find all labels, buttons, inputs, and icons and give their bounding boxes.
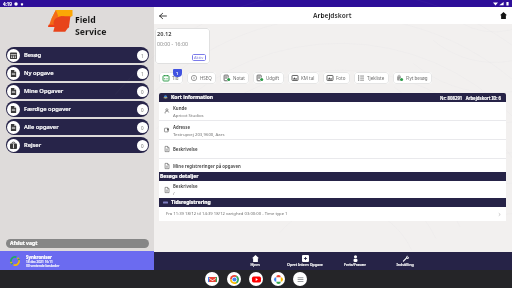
button[interactable]: Beskrivelse bbox=[159, 140, 506, 158]
staticText: Synkroniser bbox=[26, 254, 53, 260]
staticText: Adresse bbox=[173, 124, 190, 130]
staticText: Tid bbox=[172, 75, 179, 81]
button[interactable]: Besøgs detaljer bbox=[159, 172, 506, 181]
staticText: Arbejdskort bbox=[313, 11, 352, 20]
button[interactable]: Tidsregistrering bbox=[159, 198, 506, 207]
staticText: Beskrivelse bbox=[173, 146, 198, 152]
staticText: 0 bbox=[141, 125, 144, 131]
staticText: Alle opgaver bbox=[24, 123, 59, 131]
button[interactable]: Photos bbox=[271, 272, 285, 286]
staticText: Tidsregistrering bbox=[171, 199, 211, 206]
button[interactable]: Mine Opgaver bbox=[6, 83, 149, 99]
button[interactable]: Mine registreringer på opgaven bbox=[159, 159, 506, 172]
button[interactable]: Færdige opgaver bbox=[6, 101, 149, 117]
staticText: 1 bbox=[176, 71, 179, 76]
button[interactable]: YouTube bbox=[249, 272, 263, 286]
staticText: 20.12 bbox=[157, 30, 172, 38]
staticText: 0 bbox=[141, 143, 144, 149]
staticText: Tjekliste bbox=[367, 75, 385, 81]
staticText: Indstilling bbox=[396, 262, 414, 267]
staticText: 0 bbox=[141, 107, 144, 113]
staticText: Fra 11:39 18/12 til 14:39 18/12 varighed… bbox=[166, 211, 288, 217]
button[interactable]: Notat bbox=[220, 72, 249, 84]
staticText: Kunde bbox=[173, 105, 187, 111]
staticText: Kort information bbox=[171, 94, 214, 101]
button[interactable]: All apps bbox=[293, 272, 307, 286]
staticText: 00:00 - 16:00 bbox=[157, 40, 188, 47]
button[interactable]: Home bbox=[495, 7, 512, 24]
staticText: (0) ventende beskeder bbox=[26, 264, 60, 268]
button[interactable]: Kort information bbox=[159, 93, 506, 102]
button[interactable]: KM tal bbox=[288, 72, 319, 84]
staticText: Rejser bbox=[24, 141, 42, 149]
staticText: Field bbox=[75, 14, 96, 26]
button[interactable]: Back bbox=[154, 7, 171, 24]
staticText: 1 bbox=[141, 53, 144, 59]
button[interactable]: 20.12 bbox=[155, 28, 210, 64]
staticText: HSEQ bbox=[200, 75, 212, 81]
button[interactable]: Flyt besøg bbox=[393, 72, 432, 84]
staticText: Mine registreringer på opgaven bbox=[173, 163, 241, 169]
staticText: 0 bbox=[141, 89, 144, 95]
staticText: 1 bbox=[141, 71, 144, 77]
staticText: Ny opgave bbox=[24, 69, 54, 77]
button[interactable]: Besøg bbox=[6, 47, 149, 63]
staticText: Besøg bbox=[24, 51, 42, 59]
button[interactable]: Synkroniser bbox=[0, 251, 154, 270]
staticText: Hjem bbox=[250, 262, 260, 267]
button[interactable]: Afslut vagt bbox=[6, 239, 149, 248]
staticText: Service bbox=[75, 26, 107, 37]
staticText: Apricot Studios bbox=[173, 112, 204, 118]
button[interactable]: Tid bbox=[159, 72, 183, 84]
button[interactable]: Gmail bbox=[205, 272, 219, 286]
button[interactable]: HSEQ bbox=[187, 72, 216, 84]
button[interactable]: Adresse bbox=[159, 121, 506, 139]
staticText: 4:19 bbox=[3, 1, 12, 7]
staticText: Udgift bbox=[266, 75, 280, 81]
button[interactable]: Udgift bbox=[253, 72, 284, 84]
staticText: Afslut vagt bbox=[10, 240, 38, 247]
staticText: Mine Opgaver bbox=[24, 87, 64, 95]
staticText: Aktiv bbox=[194, 55, 204, 60]
button[interactable]: Fra 11:39 18/12 til 14:39 18/12 varighed… bbox=[159, 207, 506, 221]
button[interactable]: Ny opgave bbox=[6, 65, 149, 81]
staticText: Færdige opgaver bbox=[24, 105, 71, 113]
button[interactable]: Tjekliste bbox=[354, 72, 389, 84]
button[interactable]: Beskrivelse bbox=[159, 181, 506, 198]
staticText: Nr: 808291 Arbejdskort ID: 6 bbox=[440, 95, 502, 101]
staticText: 18 dec 2021 16:11 bbox=[26, 260, 53, 264]
staticText: / bbox=[173, 190, 175, 196]
staticText: Foto bbox=[336, 75, 346, 81]
staticText: Flyt besøg bbox=[406, 75, 428, 81]
staticText: Notat bbox=[233, 75, 245, 81]
staticText: Testrupvej 203,9600, Aars bbox=[173, 131, 225, 137]
button[interactable]: Hjem bbox=[230, 255, 280, 267]
staticText: Opret Intern Opgave bbox=[287, 262, 323, 267]
button[interactable]: Ferie/Fravær bbox=[330, 255, 380, 267]
button[interactable]: Indstilling bbox=[380, 255, 430, 267]
staticText: Beskrivelse bbox=[173, 183, 198, 189]
button[interactable]: Foto bbox=[323, 72, 350, 84]
staticText: Besøgs detaljer bbox=[160, 173, 199, 180]
button[interactable]: Alle opgaver bbox=[6, 119, 149, 135]
button[interactable]: Kunde bbox=[159, 102, 506, 120]
staticText: KM tal bbox=[301, 75, 315, 81]
button[interactable]: Rejser bbox=[6, 137, 149, 153]
staticText: Ferie/Fravær bbox=[344, 262, 366, 267]
button[interactable]: Chrome bbox=[227, 272, 241, 286]
button[interactable]: Opret Intern Opgave bbox=[280, 255, 330, 267]
